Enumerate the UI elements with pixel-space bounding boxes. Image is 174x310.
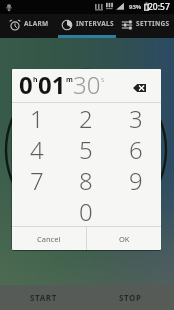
staticText: ALARM: [24, 19, 49, 28]
button[interactable]: ALARM: [0, 14, 58, 35]
button[interactable]: 0: [61, 196, 111, 226]
button[interactable]: 5: [61, 134, 111, 165]
staticText: 0: [19, 69, 33, 101]
staticText: START: [30, 292, 57, 303]
staticText: 20:57: [148, 1, 170, 13]
staticText: 01: [38, 69, 66, 101]
button[interactable]: OK: [87, 227, 161, 250]
staticText: s: [101, 75, 105, 85]
button[interactable]: 6: [111, 134, 161, 165]
button[interactable]: START: [0, 285, 87, 310]
button[interactable]: 3: [111, 103, 161, 134]
button[interactable]: SETTINGS: [116, 14, 174, 35]
button[interactable]: Backspace: [129, 76, 155, 96]
button[interactable]: 4: [12, 134, 61, 165]
staticText: 6: [129, 133, 143, 164]
button[interactable]: 8: [61, 165, 111, 196]
button[interactable]: 2: [61, 103, 111, 134]
button[interactable]: Cancel: [12, 227, 86, 250]
button[interactable]: STOP: [87, 285, 174, 310]
button[interactable]: 9: [111, 165, 161, 196]
staticText: 7: [30, 164, 44, 195]
staticText: INTERVALS: [76, 19, 114, 28]
staticText: 8: [79, 164, 93, 195]
staticText: 5: [79, 133, 93, 164]
staticText: Cancel: [37, 234, 61, 244]
staticText: SETTINGS: [136, 19, 170, 28]
staticText: 9: [129, 164, 143, 195]
button[interactable]: 1: [12, 103, 61, 134]
staticText: STOP: [119, 292, 142, 303]
staticText: h: [33, 75, 38, 85]
staticText: 93%: [129, 3, 142, 11]
staticText: 4: [30, 133, 44, 164]
staticText: 2: [79, 102, 93, 133]
staticText: 3: [129, 102, 143, 133]
button[interactable]: INTERVALS: [58, 14, 116, 35]
staticText: 0: [79, 195, 93, 225]
staticText: 1: [30, 102, 44, 133]
button[interactable]: 7: [12, 165, 61, 196]
staticText: m: [66, 75, 73, 85]
staticText: OK: [119, 234, 130, 244]
staticText: 30: [73, 69, 101, 101]
